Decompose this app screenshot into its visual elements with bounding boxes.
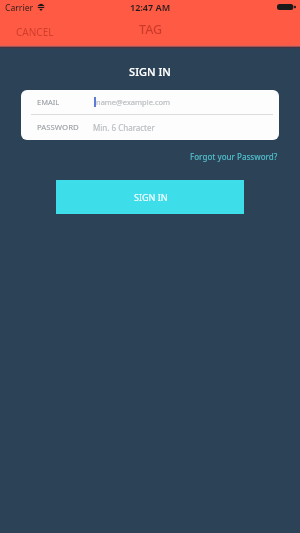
staticText: 12:47 AM (130, 1, 171, 13)
staticText: TAG (139, 21, 163, 38)
button[interactable]: EMAIL (21, 90, 279, 114)
other: Battery (277, 4, 296, 10)
button[interactable]: Forgot your Password? (168, 148, 300, 165)
staticText: PASSWORD (37, 122, 79, 133)
staticText: Forgot your Password? (190, 151, 278, 162)
staticText: name@example.com (96, 97, 171, 107)
other: Wi-Fi (37, 4, 45, 11)
staticText: CANCEL (16, 25, 54, 39)
staticText: EMAIL (37, 97, 60, 107)
button[interactable]: SIGN IN (56, 180, 244, 214)
button[interactable]: PASSWORD (21, 115, 279, 140)
staticText: SIGN IN (134, 191, 168, 203)
button[interactable]: CANCEL (0, 20, 70, 44)
staticText: SIGN IN (0, 64, 300, 79)
staticText: Carrier (5, 2, 34, 14)
staticText: Min. 6 Character (93, 122, 155, 133)
